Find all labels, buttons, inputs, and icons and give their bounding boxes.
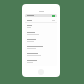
button[interactable] — [25, 51, 57, 58]
button[interactable] — [25, 37, 57, 44]
button[interactable]: Add — [25, 14, 57, 17]
button[interactable] — [25, 58, 57, 65]
button[interactable] — [25, 44, 57, 51]
button[interactable]: Home — [38, 69, 44, 75]
button[interactable] — [25, 19, 57, 22]
button[interactable] — [25, 30, 57, 37]
button[interactable] — [25, 23, 57, 30]
